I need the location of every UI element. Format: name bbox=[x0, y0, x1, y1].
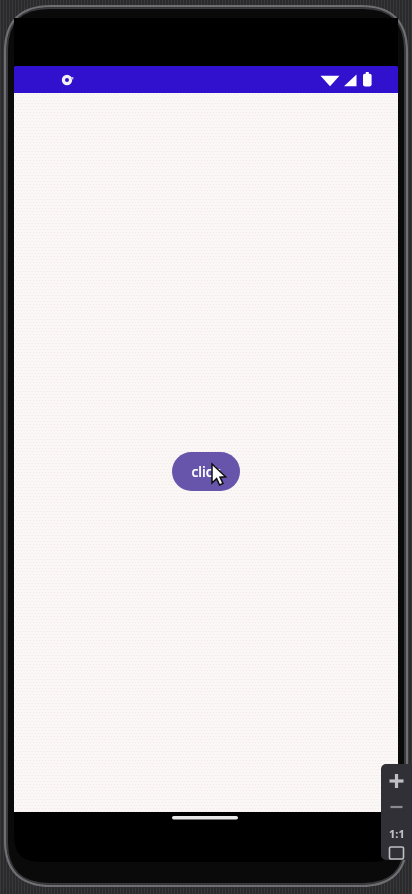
button[interactable]: click bbox=[172, 452, 240, 491]
button[interactable]: Actual size bbox=[381, 820, 412, 846]
staticText: click bbox=[191, 462, 221, 481]
button[interactable]: Zoom out bbox=[381, 794, 412, 820]
staticText: 1:1 bbox=[389, 826, 405, 841]
button[interactable]: Fit to window bbox=[381, 846, 412, 860]
button[interactable]: Zoom in bbox=[381, 768, 412, 794]
